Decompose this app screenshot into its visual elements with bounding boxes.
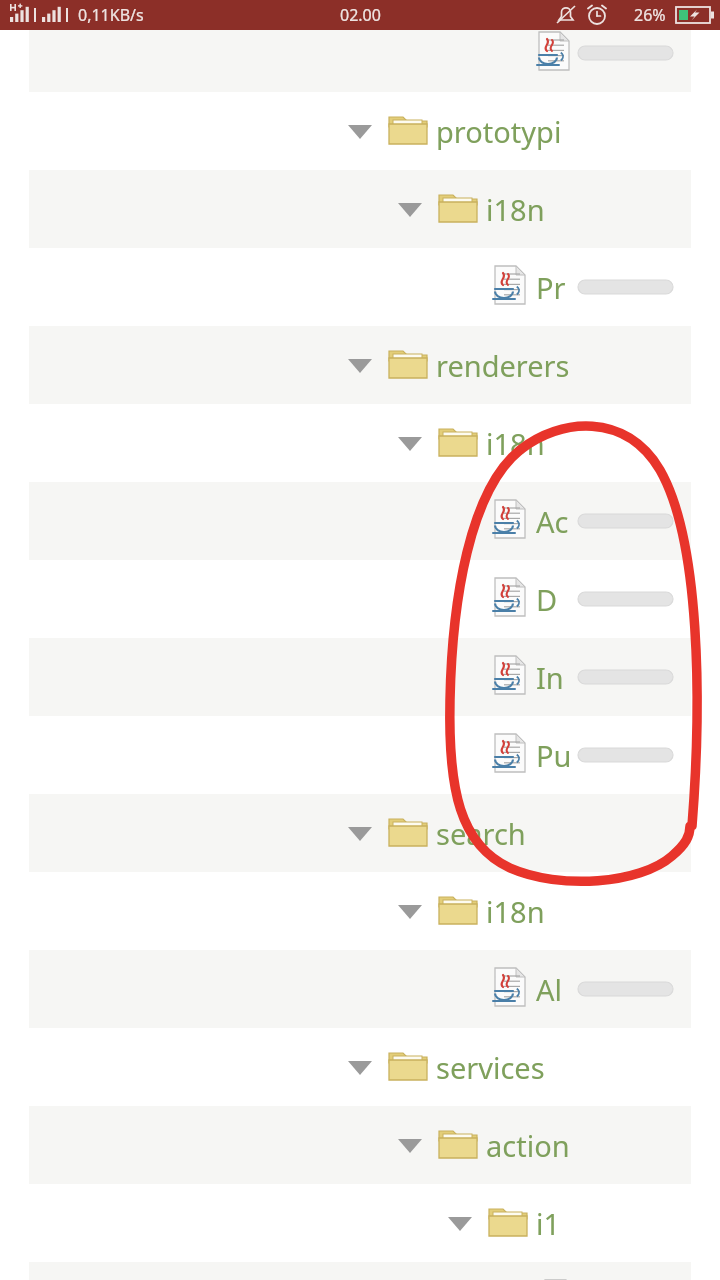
staticText: i1 xyxy=(536,1204,561,1243)
button[interactable] xyxy=(0,14,720,92)
button[interactable]: Pu xyxy=(0,716,720,794)
button[interactable]: services xyxy=(0,1028,720,1106)
staticText: 0,11KB/s xyxy=(78,4,144,26)
button[interactable]: Al xyxy=(0,950,720,1028)
staticText: Ac xyxy=(536,502,569,541)
staticText: In xyxy=(536,658,564,697)
staticText: 02.00 xyxy=(340,4,381,26)
staticText: i18n xyxy=(486,190,545,229)
button[interactable]: i18n xyxy=(0,404,720,482)
button[interactable]: In xyxy=(0,638,720,716)
staticText: action xyxy=(486,1126,570,1165)
button[interactable]: action xyxy=(0,1106,720,1184)
button[interactable]: Ac xyxy=(0,482,720,560)
staticText: i18n xyxy=(486,892,545,931)
button[interactable]: prototypi xyxy=(0,92,720,170)
staticText: D xyxy=(536,580,558,619)
staticText: Pr xyxy=(536,268,566,307)
button[interactable]: i18n xyxy=(0,872,720,950)
staticText: renderers xyxy=(436,346,570,385)
staticText: Al xyxy=(536,970,563,1009)
staticText: i18n xyxy=(486,424,545,463)
button[interactable]: Pr xyxy=(0,248,720,326)
staticText: prototypi xyxy=(436,112,562,151)
other: Highlight annotation xyxy=(0,0,720,1280)
staticText: search xyxy=(436,814,526,853)
button[interactable]: renderers xyxy=(0,326,720,404)
button[interactable]: D xyxy=(0,560,720,638)
button[interactable]: i18n xyxy=(0,170,720,248)
staticText: services xyxy=(436,1048,545,1087)
button[interactable]: search xyxy=(0,794,720,872)
button[interactable]: i1 xyxy=(0,1184,720,1262)
button[interactable] xyxy=(0,1262,720,1280)
staticText: Pu xyxy=(536,736,572,775)
staticText: 26% xyxy=(634,4,666,26)
